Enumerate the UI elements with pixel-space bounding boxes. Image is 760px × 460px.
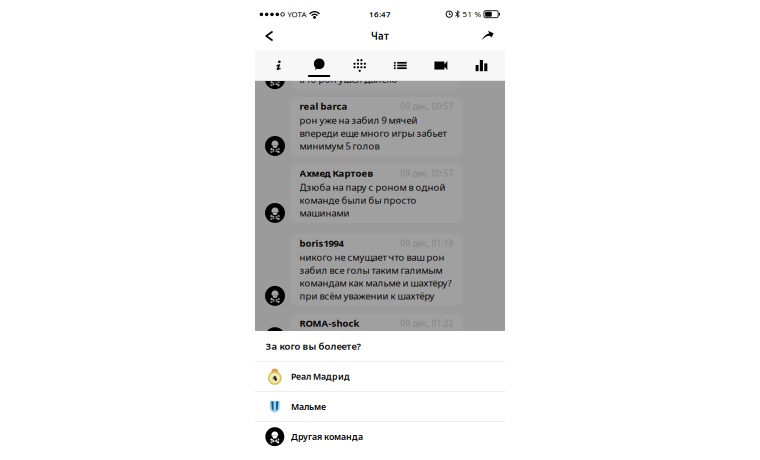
button[interactable]: Info [258, 50, 299, 81]
staticText: 16:47 [369, 9, 391, 19]
staticText: машинами [299, 206, 349, 219]
staticText: при всём уважении к шахтёру [299, 289, 434, 302]
staticText: 09 дек., 01:18 [400, 238, 453, 249]
button[interactable]: Реал Мадрид [255, 362, 505, 391]
staticText: 09 дек., 00:55 [400, 60, 453, 71]
button[interactable]: Share [474, 20, 502, 50]
staticText: За кого вы болеете? [265, 339, 360, 352]
staticText: Мальме [291, 401, 326, 413]
staticText: а то рон ушел далеко [299, 73, 397, 86]
staticText: Другая команда [291, 431, 363, 443]
staticText: никого не смущает что ваш рон [299, 251, 444, 264]
staticText: забил все голы таким галимым [299, 264, 442, 276]
button[interactable]: Stats [461, 50, 502, 81]
staticText: ну и что [299, 331, 336, 344]
button[interactable]: Keypad [339, 50, 380, 81]
staticText: минимум 5 голов [299, 139, 379, 152]
staticText: Дзюба на пару с роном в одной [299, 181, 445, 194]
staticText: 09 дек., 01:22 [400, 318, 453, 329]
button[interactable]: Video [421, 50, 461, 81]
staticText: 09 дек., 00:57 [400, 168, 453, 179]
staticText: 51 % [462, 9, 481, 19]
staticText: GADJIEV [299, 59, 338, 71]
staticText: boris1994 [299, 237, 343, 249]
staticText: Ахмед Картоев [299, 167, 373, 179]
staticText: Чат [371, 29, 389, 43]
staticText: командам как мальме и шахтёру? [299, 276, 451, 289]
staticText: YOTA [287, 9, 306, 19]
staticText: ROMA-shock [299, 317, 359, 329]
staticText: впереди еще много игры забьет [299, 127, 446, 139]
button[interactable]: Back [255, 21, 283, 51]
button[interactable]: List [380, 50, 421, 81]
button[interactable]: Другая команда [255, 422, 505, 451]
staticText: 09 дек., 00:57 [400, 101, 453, 112]
staticText: рон уже на забил 9 мячей [299, 114, 417, 127]
staticText: команде были бы просто [299, 194, 416, 206]
staticText: Реал Мадрид [291, 370, 350, 382]
button[interactable]: Chat [299, 50, 339, 81]
staticText: real barca [299, 100, 347, 112]
button[interactable]: Мальме [255, 392, 505, 421]
